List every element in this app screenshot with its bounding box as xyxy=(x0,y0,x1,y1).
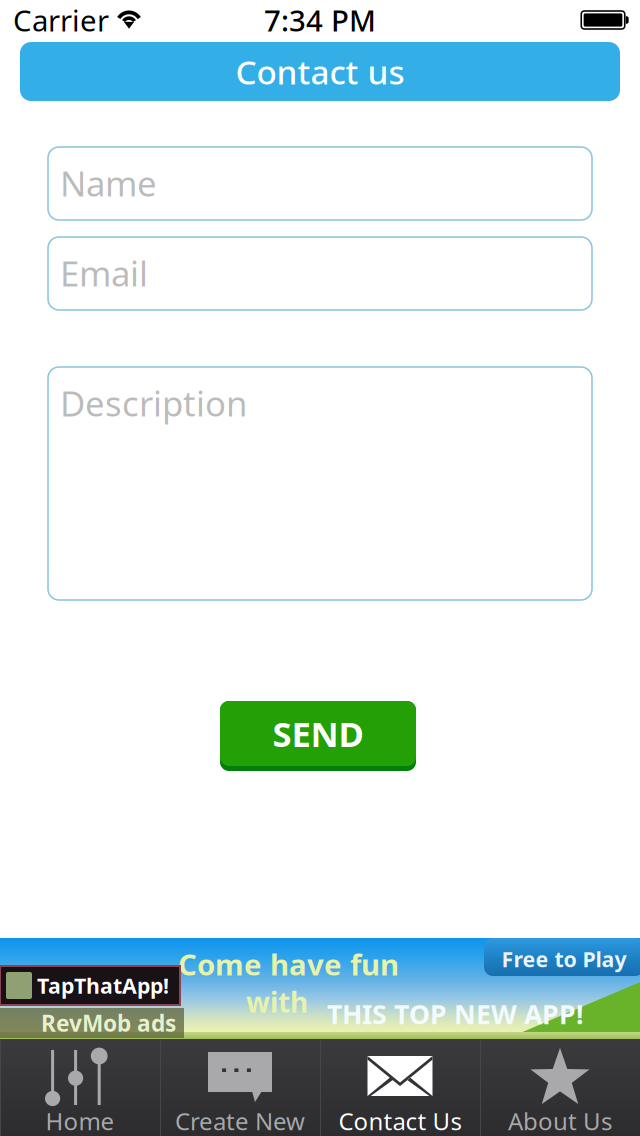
staticText: SEND xyxy=(272,710,363,756)
button[interactable]: Contact Us xyxy=(320,1039,480,1136)
staticText: Come have fun xyxy=(178,944,399,983)
button[interactable]: Home xyxy=(0,1039,160,1136)
staticText: Description xyxy=(60,380,247,426)
staticText: About Us xyxy=(508,1105,612,1136)
staticText: Contact us xyxy=(235,49,404,94)
staticText: Free to Play xyxy=(501,945,626,973)
staticText: THIS TOP NEW APP! xyxy=(327,996,584,1032)
button[interactable]: Create New xyxy=(160,1039,320,1136)
button[interactable]: Advertisement xyxy=(0,938,640,1039)
staticText: Name xyxy=(60,160,157,206)
button[interactable]: Contact us xyxy=(0,42,640,101)
button[interactable]: Description xyxy=(48,367,592,600)
staticText: Email xyxy=(60,250,148,296)
staticText: Home xyxy=(45,1105,114,1136)
staticText: Create New xyxy=(175,1105,305,1136)
staticText: Contact Us xyxy=(338,1105,461,1136)
staticText: RevMob ads xyxy=(41,1008,176,1038)
staticText: 7:34 PM xyxy=(264,0,376,39)
staticText: with xyxy=(246,983,308,1021)
button[interactable]: SEND xyxy=(222,701,418,771)
button[interactable]: Name xyxy=(48,147,592,220)
button[interactable]: Email xyxy=(48,237,592,310)
button[interactable]: About Us xyxy=(480,1039,640,1136)
staticText: TapThatApp! xyxy=(37,971,169,1000)
staticText: Carrier xyxy=(13,0,109,39)
